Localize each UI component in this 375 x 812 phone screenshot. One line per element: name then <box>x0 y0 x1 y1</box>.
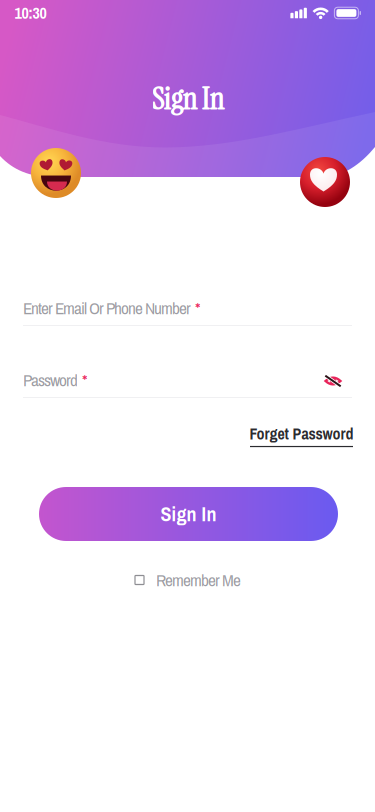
staticText: Forget Password <box>249 423 353 444</box>
staticText: Enter Email Or Phone Number <box>23 296 191 320</box>
staticText: * <box>78 368 88 392</box>
button[interactable]: Toggle password visibility <box>318 368 348 394</box>
button[interactable]: Remember Me <box>98 567 278 593</box>
staticText: Sign In <box>151 79 223 119</box>
button[interactable]: Forget Password <box>249 424 354 446</box>
staticText: Password <box>23 368 78 392</box>
staticText: Sign In <box>160 500 216 527</box>
staticText: Remember Me <box>156 568 241 592</box>
staticText: 10:30 <box>14 2 46 24</box>
staticText: * <box>191 296 201 320</box>
button[interactable]: Sign In <box>39 487 338 541</box>
